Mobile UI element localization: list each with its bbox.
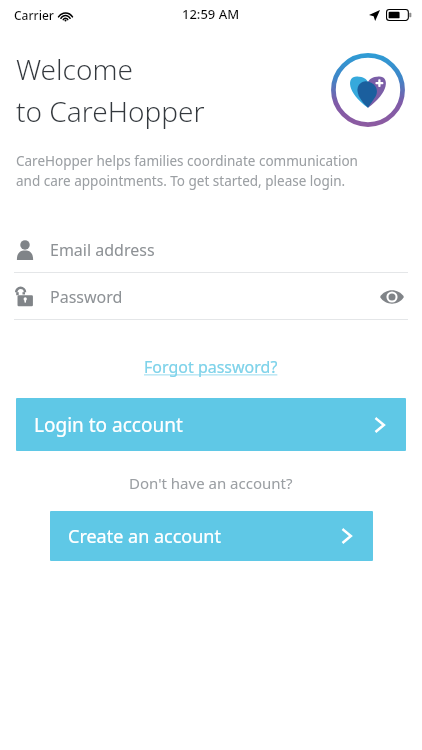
button[interactable]: Login to account [16, 398, 406, 451]
button[interactable]: Password [0, 275, 422, 319]
other: Account [14, 239, 36, 261]
staticText: Create an account [68, 524, 221, 549]
button[interactable]: Create an account [50, 511, 373, 561]
other: CareHopper logo [330, 52, 406, 128]
button[interactable]: Forgot password? [134, 350, 288, 384]
staticText: 12:59 AM [182, 5, 240, 23]
staticText: to CareHopper [16, 92, 205, 130]
staticText: Carrier [14, 7, 54, 23]
button[interactable]: Account [0, 228, 422, 272]
staticText: Forgot password? [144, 356, 278, 378]
staticText: Welcome [16, 50, 133, 88]
staticText: Password [50, 286, 372, 308]
staticText: Email address [50, 239, 412, 261]
button[interactable]: Show password [372, 277, 412, 317]
other: Password [14, 286, 36, 308]
staticText: Don't have an account? [129, 473, 293, 493]
staticText: CareHopper helps families coordinate com… [16, 152, 358, 190]
staticText: Login to account [34, 412, 183, 438]
